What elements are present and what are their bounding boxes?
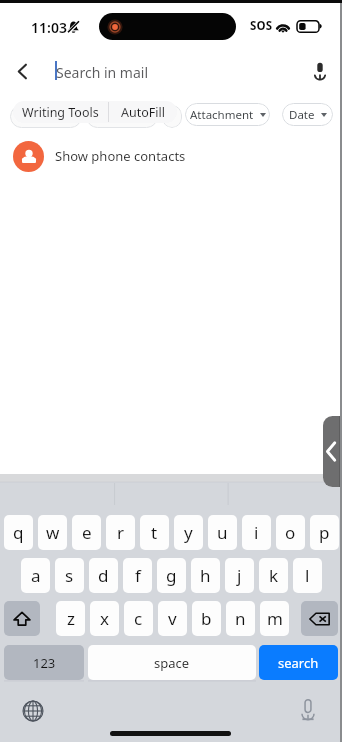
button[interactable]: m: [260, 601, 289, 636]
staticText: a: [31, 564, 41, 587]
button[interactable]: x: [90, 601, 119, 636]
button[interactable]: j: [225, 558, 254, 593]
staticText: d: [98, 564, 109, 587]
button[interactable]: k: [259, 558, 288, 593]
button[interactable]: b: [192, 601, 221, 636]
button[interactable]: Back: [2, 51, 42, 91]
button[interactable]: r: [106, 515, 135, 550]
button[interactable]: t: [140, 515, 169, 550]
button[interactable]: f: [123, 558, 152, 593]
button[interactable]: w: [38, 515, 67, 550]
button[interactable]: l: [293, 558, 322, 593]
staticText: Writing Tools: [22, 104, 99, 121]
button[interactable]: p: [310, 515, 339, 550]
staticText: t: [151, 521, 158, 544]
staticText: Search in mail: [56, 63, 149, 82]
staticText: p: [319, 521, 330, 544]
staticText: h: [200, 564, 211, 587]
staticText: y: [184, 521, 193, 544]
button[interactable]: i: [242, 515, 271, 550]
button[interactable]: u: [208, 515, 237, 550]
button[interactable]: Expand panel: [323, 416, 342, 487]
button[interactable]: Change keyboard: [17, 695, 49, 727]
staticText: k: [269, 564, 279, 587]
button[interactable]: space: [88, 645, 256, 680]
staticText: AutoFill: [121, 104, 165, 121]
button[interactable]: q: [4, 515, 33, 550]
staticText: space: [154, 654, 190, 672]
button[interactable]: v: [158, 601, 187, 636]
button[interactable]: AutoFill: [109, 101, 177, 123]
button[interactable]: e: [72, 515, 101, 550]
staticText: b: [201, 607, 212, 630]
staticText: e: [82, 521, 92, 544]
staticText: n: [235, 607, 246, 630]
staticText: c: [134, 607, 143, 630]
staticText: j: [237, 564, 242, 587]
button[interactable]: s: [55, 558, 84, 593]
staticText: 11:03: [31, 18, 67, 37]
staticText: w: [46, 521, 60, 544]
staticText: u: [217, 521, 228, 544]
button[interactable]: Shift: [4, 601, 40, 636]
other: Backspace: [309, 611, 330, 627]
button[interactable]: o: [276, 515, 305, 550]
staticText: x: [100, 607, 109, 630]
staticText: Show phone contacts: [55, 147, 186, 165]
staticText: i: [254, 521, 259, 544]
staticText: r: [117, 521, 125, 544]
button[interactable]: d: [89, 558, 118, 593]
button[interactable]: h: [191, 558, 220, 593]
staticText: l: [305, 564, 310, 587]
staticText: m: [267, 607, 283, 630]
button[interactable]: search: [259, 645, 338, 680]
button[interactable]: Dictate: [292, 694, 324, 726]
button[interactable]: g: [157, 558, 186, 593]
staticText: Date: [289, 107, 315, 123]
staticText: search: [278, 654, 319, 672]
button[interactable]: z: [56, 601, 85, 636]
staticText: s: [65, 564, 74, 587]
button[interactable]: Attachment: [185, 103, 270, 126]
staticText: f: [135, 564, 141, 587]
button[interactable]: Show phone contacts: [0, 136, 342, 176]
button[interactable]: Voice search: [300, 51, 340, 91]
staticText: Attachment: [190, 107, 254, 123]
button[interactable]: Writing Tools: [13, 101, 108, 123]
button[interactable]: a: [21, 558, 50, 593]
staticText: z: [67, 607, 75, 630]
button[interactable]: Backspace: [301, 601, 338, 636]
button[interactable]: Date: [282, 103, 333, 126]
button[interactable]: c: [124, 601, 153, 636]
button[interactable]: y: [174, 515, 203, 550]
staticText: SOS: [250, 18, 273, 34]
other: Shift: [13, 610, 31, 628]
button[interactable]: n: [226, 601, 255, 636]
staticText: 123: [33, 654, 56, 672]
staticText: v: [168, 607, 177, 630]
staticText: o: [285, 521, 296, 544]
staticText: g: [166, 564, 177, 587]
button[interactable]: 123: [4, 645, 84, 680]
staticText: q: [13, 521, 24, 544]
